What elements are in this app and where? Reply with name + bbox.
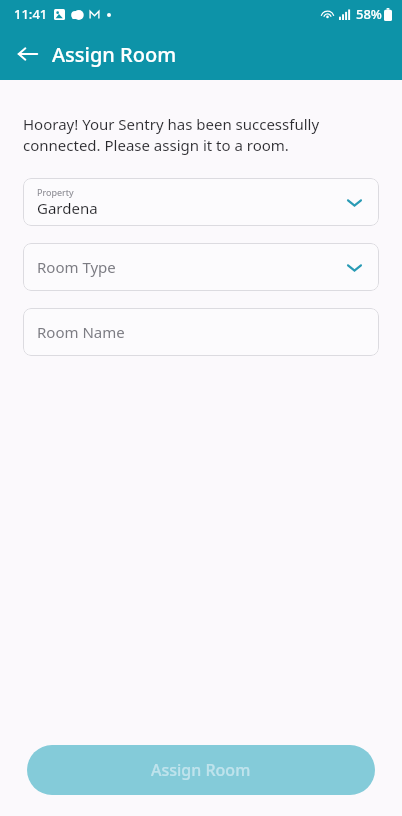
staticText: Room Name <box>37 322 125 342</box>
staticText: 58% <box>356 5 382 23</box>
staticText: Hooray! Your Sentry has been successfull… <box>23 114 320 156</box>
staticText: Property <box>37 186 74 198</box>
button[interactable]: Property <box>23 178 379 226</box>
button[interactable]: Assign Room <box>27 745 375 795</box>
button[interactable]: Back <box>8 34 48 74</box>
staticText: Room Type <box>37 257 116 277</box>
staticText: 11:41 <box>14 5 48 23</box>
staticText: Assign Room <box>151 759 251 781</box>
staticText: Assign Room <box>52 41 177 68</box>
button[interactable]: Room Name <box>23 308 379 356</box>
button[interactable]: Room Type <box>23 243 379 291</box>
staticText: Gardena <box>37 198 98 218</box>
